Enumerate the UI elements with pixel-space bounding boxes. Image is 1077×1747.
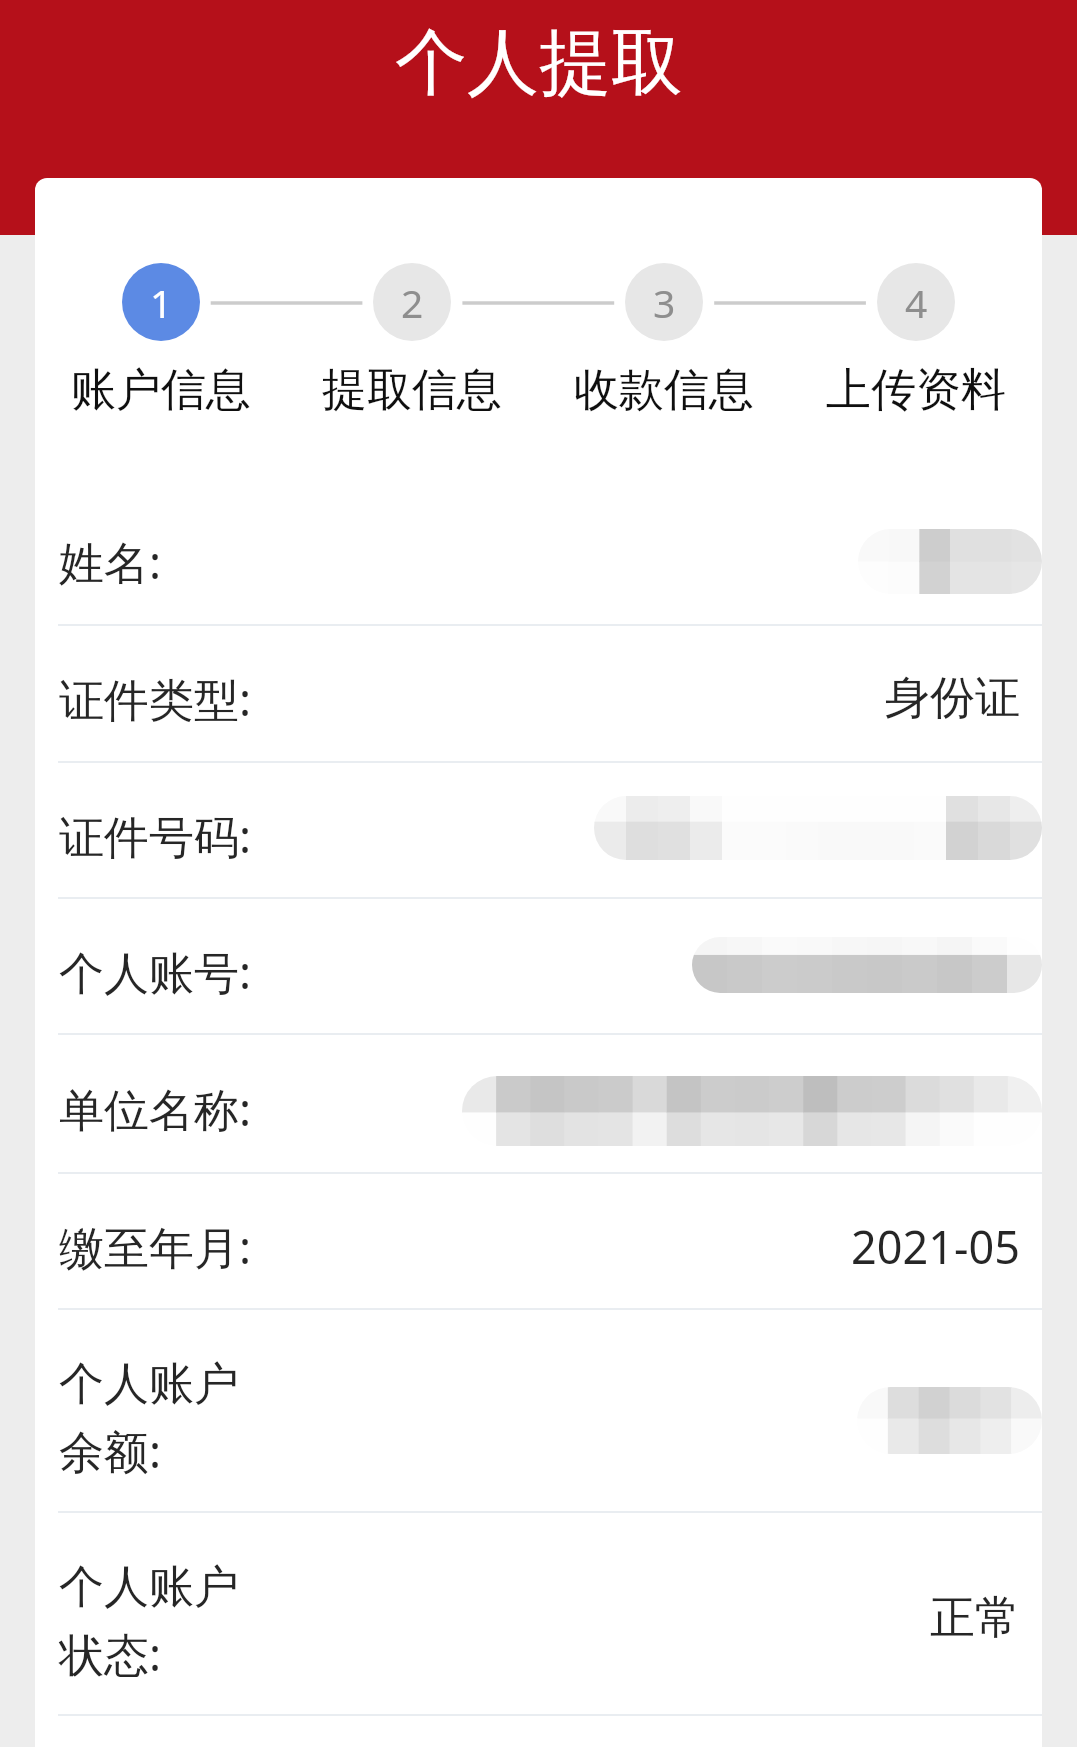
button[interactable]: Step 3 xyxy=(625,263,703,341)
staticText: 个人账户 余额: xyxy=(59,1356,239,1482)
staticText: 3 xyxy=(653,276,676,329)
staticText: 2 xyxy=(401,276,424,329)
button[interactable]: Step 4 xyxy=(877,263,955,341)
staticText: 提取信息 xyxy=(322,362,502,419)
button[interactable]: 收款信息 xyxy=(554,362,774,419)
staticText: 4 xyxy=(905,276,928,329)
staticText: 正常 xyxy=(930,1590,1020,1647)
button[interactable]: Step 1 xyxy=(122,263,200,341)
button[interactable]: Step 2 xyxy=(373,263,451,341)
button[interactable]: 证件号码: xyxy=(35,763,1042,899)
staticText: 证件类型: xyxy=(59,668,252,729)
button[interactable]: 缴至年月: xyxy=(35,1174,1042,1310)
staticText: 账户信息 xyxy=(71,362,251,419)
staticText: 身份证 xyxy=(885,670,1020,727)
button[interactable]: 账户信息 xyxy=(51,362,271,419)
staticText: 2021-05 xyxy=(851,1216,1020,1277)
staticText: 单位名称: xyxy=(59,1078,252,1139)
button[interactable]: 个人账户 状态: xyxy=(35,1513,1042,1716)
staticText: 个人账号: xyxy=(59,941,252,1002)
staticText: 缴至年月: xyxy=(59,1216,252,1277)
staticText: 姓名: xyxy=(59,531,162,592)
staticText: 证件号码: xyxy=(59,805,252,866)
button[interactable]: 上传资料 xyxy=(806,362,1026,419)
staticText: 上传资料 xyxy=(826,362,1006,419)
button[interactable]: 单位名称: xyxy=(35,1035,1042,1174)
staticText: 1 xyxy=(150,276,173,329)
button[interactable]: 证件类型: xyxy=(35,626,1042,763)
button[interactable]: 提取信息 xyxy=(302,362,522,419)
button[interactable]: 姓名: xyxy=(35,489,1042,626)
button[interactable]: 个人账号: xyxy=(35,899,1042,1035)
staticText: 个人提取 xyxy=(395,18,683,109)
staticText: 收款信息 xyxy=(574,362,754,419)
staticText: 个人账户 状态: xyxy=(59,1559,239,1685)
button[interactable]: 个人账户 余额: xyxy=(35,1310,1042,1513)
